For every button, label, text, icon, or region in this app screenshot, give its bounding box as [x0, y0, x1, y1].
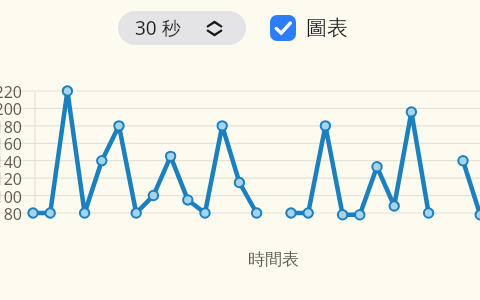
staticText: 圖表	[306, 15, 348, 41]
staticText: 120	[0, 168, 22, 189]
staticText: 30 秒	[135, 15, 181, 41]
button[interactable]: 30 秒	[118, 11, 246, 45]
staticText: 時間表	[248, 249, 299, 270]
staticText: 80	[0, 203, 22, 224]
staticText: 200	[0, 98, 22, 119]
staticText: 100	[0, 186, 22, 207]
other: 圖表 checkbox, checked	[270, 15, 296, 41]
staticText: 140	[0, 151, 22, 172]
staticText: 180	[0, 116, 22, 137]
staticText: 160	[0, 133, 22, 154]
button[interactable]: 圖表 checkbox, checked	[270, 7, 348, 49]
staticText: 220	[0, 81, 22, 102]
